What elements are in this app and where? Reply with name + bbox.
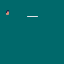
button[interactable] [27, 16, 38, 17]
button[interactable]: Profile avatar [6, 10, 9, 15]
